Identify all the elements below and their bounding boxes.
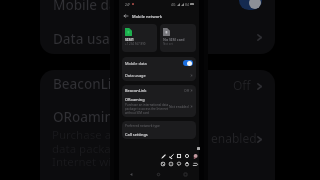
staticText: Call settings bbox=[125, 132, 148, 137]
staticText: Not enabled bbox=[169, 104, 189, 109]
button[interactable]: Home bbox=[155, 171, 162, 178]
staticText: Mobile data bbox=[125, 61, 147, 66]
button[interactable]: Undo bbox=[191, 160, 199, 168]
staticText: ORoaming bbox=[125, 97, 145, 102]
button[interactable]: Call settings bbox=[122, 130, 196, 139]
staticText: Data usage bbox=[53, 30, 126, 48]
button[interactable]: Sticker bbox=[183, 160, 191, 168]
staticText: Purchase an international data package t… bbox=[125, 103, 169, 115]
staticText: Mobile data bbox=[53, 0, 130, 14]
staticText: Off bbox=[233, 77, 251, 93]
staticText: Purchase an bbox=[52, 127, 119, 143]
staticText: BeaconLink bbox=[53, 75, 128, 93]
button[interactable]: Data usage bbox=[122, 69, 196, 81]
button[interactable]: Recents bbox=[182, 171, 189, 178]
button[interactable]: Mobile data bbox=[122, 57, 196, 69]
staticText: Off bbox=[184, 88, 189, 93]
staticText: BeaconLink bbox=[125, 88, 147, 93]
button[interactable]: Eraser bbox=[191, 152, 199, 160]
button[interactable]: Preferred network type bbox=[122, 121, 196, 130]
staticText: data packag bbox=[52, 141, 118, 157]
staticText: Mobile network bbox=[132, 14, 163, 19]
staticText: SIM1 bbox=[125, 37, 134, 42]
button[interactable]: Rounded rectangle bbox=[183, 152, 191, 160]
button[interactable]: No SIM card bbox=[160, 24, 196, 52]
staticText: Not set bbox=[163, 42, 173, 46]
button[interactable]: Rectangle bbox=[175, 152, 183, 160]
staticText: enabled bbox=[211, 130, 257, 146]
button[interactable]: More options bbox=[197, 147, 200, 150]
button[interactable]: ORoaming bbox=[122, 95, 196, 117]
staticText: No SIM card bbox=[163, 37, 185, 42]
button[interactable]: SIM1 bbox=[122, 24, 157, 52]
staticText: 84 bbox=[185, 2, 189, 6]
button[interactable]: Comment bbox=[175, 160, 183, 168]
staticText: 4G bbox=[171, 2, 176, 6]
staticText: +1 234 567 890 bbox=[125, 42, 146, 46]
button[interactable]: Mosaic bbox=[159, 160, 167, 168]
button[interactable]: Image bbox=[167, 160, 175, 168]
button[interactable]: Pen bbox=[159, 152, 167, 160]
button[interactable]: Highlighter bbox=[167, 152, 175, 160]
staticText: ORoaming bbox=[53, 108, 122, 126]
staticText: Internet with bbox=[52, 154, 123, 170]
staticText: 24° bbox=[125, 2, 131, 6]
button[interactable]: BeaconLink bbox=[122, 85, 196, 95]
staticText: Data usage bbox=[125, 73, 146, 78]
staticText: Preferred network type bbox=[125, 124, 160, 128]
button[interactable]: Back bbox=[122, 12, 130, 20]
button[interactable]: Back bbox=[128, 171, 135, 178]
